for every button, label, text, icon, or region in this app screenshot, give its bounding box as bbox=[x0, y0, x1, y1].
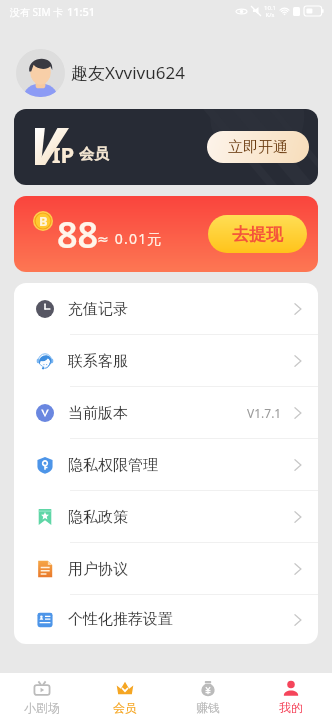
staticText: 小剧场 bbox=[24, 700, 60, 715]
staticText: 立即开通 bbox=[228, 138, 288, 157]
button[interactable]: 我的 bbox=[249, 673, 332, 719]
staticText: 隐私权限管理 bbox=[68, 456, 158, 475]
button[interactable]: 充值记录 bbox=[14, 283, 318, 335]
staticText: 没有 SIM 卡 bbox=[10, 5, 64, 19]
staticText: 10.1 K/s bbox=[264, 4, 276, 18]
staticText: 88 bbox=[57, 210, 99, 259]
staticText: 联系客服 bbox=[68, 352, 128, 371]
staticText: 趣友Xvvivu624 bbox=[71, 61, 185, 84]
button[interactable]: B bbox=[14, 196, 318, 272]
staticText: 充值记录 bbox=[68, 300, 128, 319]
staticText: 我的 bbox=[279, 700, 303, 715]
staticText: ≈ 0.01元 bbox=[97, 229, 163, 248]
button[interactable]: 隐私权限管理 bbox=[14, 439, 318, 491]
staticText: 会员 bbox=[79, 145, 109, 164]
staticText: 去提现 bbox=[232, 224, 283, 245]
staticText: IP bbox=[52, 139, 75, 169]
button[interactable]: 去提现 bbox=[208, 215, 307, 253]
button[interactable]: 用户协议 bbox=[14, 543, 318, 595]
button[interactable]: 小剧场 bbox=[0, 673, 83, 719]
button[interactable]: 隐私政策 bbox=[14, 491, 318, 543]
button[interactable]: 立即开通 bbox=[207, 131, 309, 163]
staticText: 会员 bbox=[113, 700, 137, 715]
staticText: 用户协议 bbox=[68, 560, 128, 579]
button[interactable]: IP bbox=[14, 109, 318, 185]
staticText: B bbox=[39, 212, 48, 230]
staticText: V1.7.1 bbox=[247, 405, 282, 421]
button[interactable]: 赚钱 bbox=[166, 673, 249, 719]
staticText: 个性化推荐设置 bbox=[68, 610, 173, 629]
staticText: 隐私政策 bbox=[68, 508, 128, 527]
staticText: 11:51 bbox=[67, 4, 96, 19]
staticText: 赚钱 bbox=[196, 700, 220, 715]
button[interactable]: 个性化推荐设置 bbox=[14, 595, 318, 644]
button[interactable]: 会员 bbox=[83, 673, 166, 719]
button[interactable]: 当前版本 bbox=[14, 387, 318, 439]
staticText: 当前版本 bbox=[68, 404, 128, 423]
button[interactable]: Profile avatar bbox=[16, 49, 65, 97]
button[interactable]: 联系客服 bbox=[14, 335, 318, 387]
